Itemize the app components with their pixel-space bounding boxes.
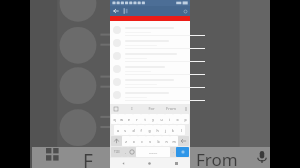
other: Voice input bbox=[255, 150, 269, 164]
button[interactable]: Backspace bbox=[178, 136, 189, 146]
button[interactable]: x bbox=[130, 136, 138, 146]
button[interactable]: r bbox=[133, 114, 141, 124]
button[interactable]: Add contact bbox=[180, 6, 190, 16]
button[interactable]: Enter bbox=[176, 147, 189, 157]
button[interactable]: k bbox=[169, 125, 177, 135]
button[interactable] bbox=[110, 49, 190, 62]
button[interactable]: q bbox=[111, 114, 118, 124]
button[interactable]: Back bbox=[110, 6, 122, 16]
button[interactable]: More suggestions bbox=[181, 104, 190, 113]
staticText: o bbox=[176, 117, 179, 122]
button[interactable]: Emoji bbox=[128, 147, 136, 157]
staticText: b bbox=[157, 139, 160, 144]
button[interactable] bbox=[110, 36, 190, 49]
button[interactable]: p bbox=[181, 114, 189, 124]
staticText: j bbox=[165, 128, 166, 133]
button[interactable]: u bbox=[157, 114, 165, 124]
staticText: For bbox=[148, 106, 155, 111]
staticText: f bbox=[140, 128, 142, 133]
button[interactable]: h bbox=[153, 125, 161, 135]
staticText: e bbox=[128, 117, 130, 122]
staticText: F bbox=[83, 148, 93, 168]
button[interactable]: Back bbox=[110, 158, 136, 168]
button[interactable] bbox=[110, 62, 190, 75]
staticText: r bbox=[136, 117, 138, 122]
button[interactable]: o bbox=[173, 114, 181, 124]
button[interactable]: i bbox=[165, 114, 173, 124]
button[interactable]: m bbox=[170, 136, 178, 146]
button[interactable] bbox=[110, 88, 190, 101]
button[interactable]: Shift bbox=[111, 136, 122, 146]
staticText: k bbox=[172, 128, 174, 133]
staticText: . bbox=[173, 150, 174, 154]
staticText: x bbox=[133, 139, 135, 144]
staticText: q bbox=[113, 117, 116, 122]
button[interactable]: Recent apps bbox=[163, 158, 190, 168]
staticText: w bbox=[120, 117, 123, 122]
button[interactable] bbox=[110, 75, 190, 88]
button[interactable]: v bbox=[146, 136, 154, 146]
staticText: z bbox=[125, 139, 127, 144]
staticText: m bbox=[172, 139, 176, 144]
button[interactable]: b bbox=[154, 136, 162, 146]
button[interactable]: a bbox=[114, 125, 121, 135]
button[interactable]: I bbox=[122, 104, 141, 113]
staticText: i bbox=[169, 117, 170, 122]
staticText: c bbox=[141, 139, 143, 144]
staticText: n bbox=[165, 139, 168, 144]
button[interactable]: s bbox=[121, 125, 129, 135]
staticText: l bbox=[181, 128, 182, 133]
button[interactable]: n bbox=[162, 136, 170, 146]
staticText: , bbox=[125, 150, 126, 154]
staticText: From bbox=[196, 148, 238, 168]
button[interactable]: l bbox=[177, 125, 185, 135]
staticText: g bbox=[148, 128, 151, 133]
staticText: I bbox=[131, 106, 133, 111]
button[interactable]: ?123 bbox=[111, 147, 122, 157]
staticText: a bbox=[117, 128, 119, 133]
button[interactable]: g bbox=[145, 125, 153, 135]
button[interactable]: w bbox=[118, 114, 125, 124]
button[interactable]: c bbox=[138, 136, 146, 146]
staticText: h bbox=[156, 128, 159, 133]
staticText: From bbox=[166, 106, 176, 111]
staticText: d bbox=[132, 128, 135, 133]
button[interactable] bbox=[122, 6, 180, 16]
button[interactable]: f bbox=[137, 125, 145, 135]
button[interactable]: From bbox=[161, 104, 181, 113]
button[interactable] bbox=[110, 23, 190, 36]
staticText: t bbox=[144, 117, 146, 122]
button[interactable]: Space bbox=[136, 147, 170, 157]
button[interactable]: d bbox=[129, 125, 137, 135]
staticText: English bbox=[149, 151, 158, 154]
button[interactable]: t bbox=[141, 114, 149, 124]
staticText: ?123 bbox=[114, 150, 120, 154]
button[interactable]: Home bbox=[136, 158, 163, 168]
button[interactable]: j bbox=[161, 125, 169, 135]
button[interactable]: z bbox=[122, 136, 130, 146]
button[interactable]: e bbox=[125, 114, 133, 124]
staticText: u bbox=[160, 117, 163, 122]
staticText: p bbox=[184, 117, 187, 122]
button[interactable]: For bbox=[141, 104, 161, 113]
staticText: s bbox=[124, 128, 126, 133]
button[interactable]: y bbox=[149, 114, 157, 124]
staticText: y bbox=[152, 117, 154, 122]
button[interactable]: Keyboard options bbox=[110, 104, 122, 113]
staticText: v bbox=[149, 139, 151, 144]
button[interactable]: , bbox=[122, 147, 128, 157]
